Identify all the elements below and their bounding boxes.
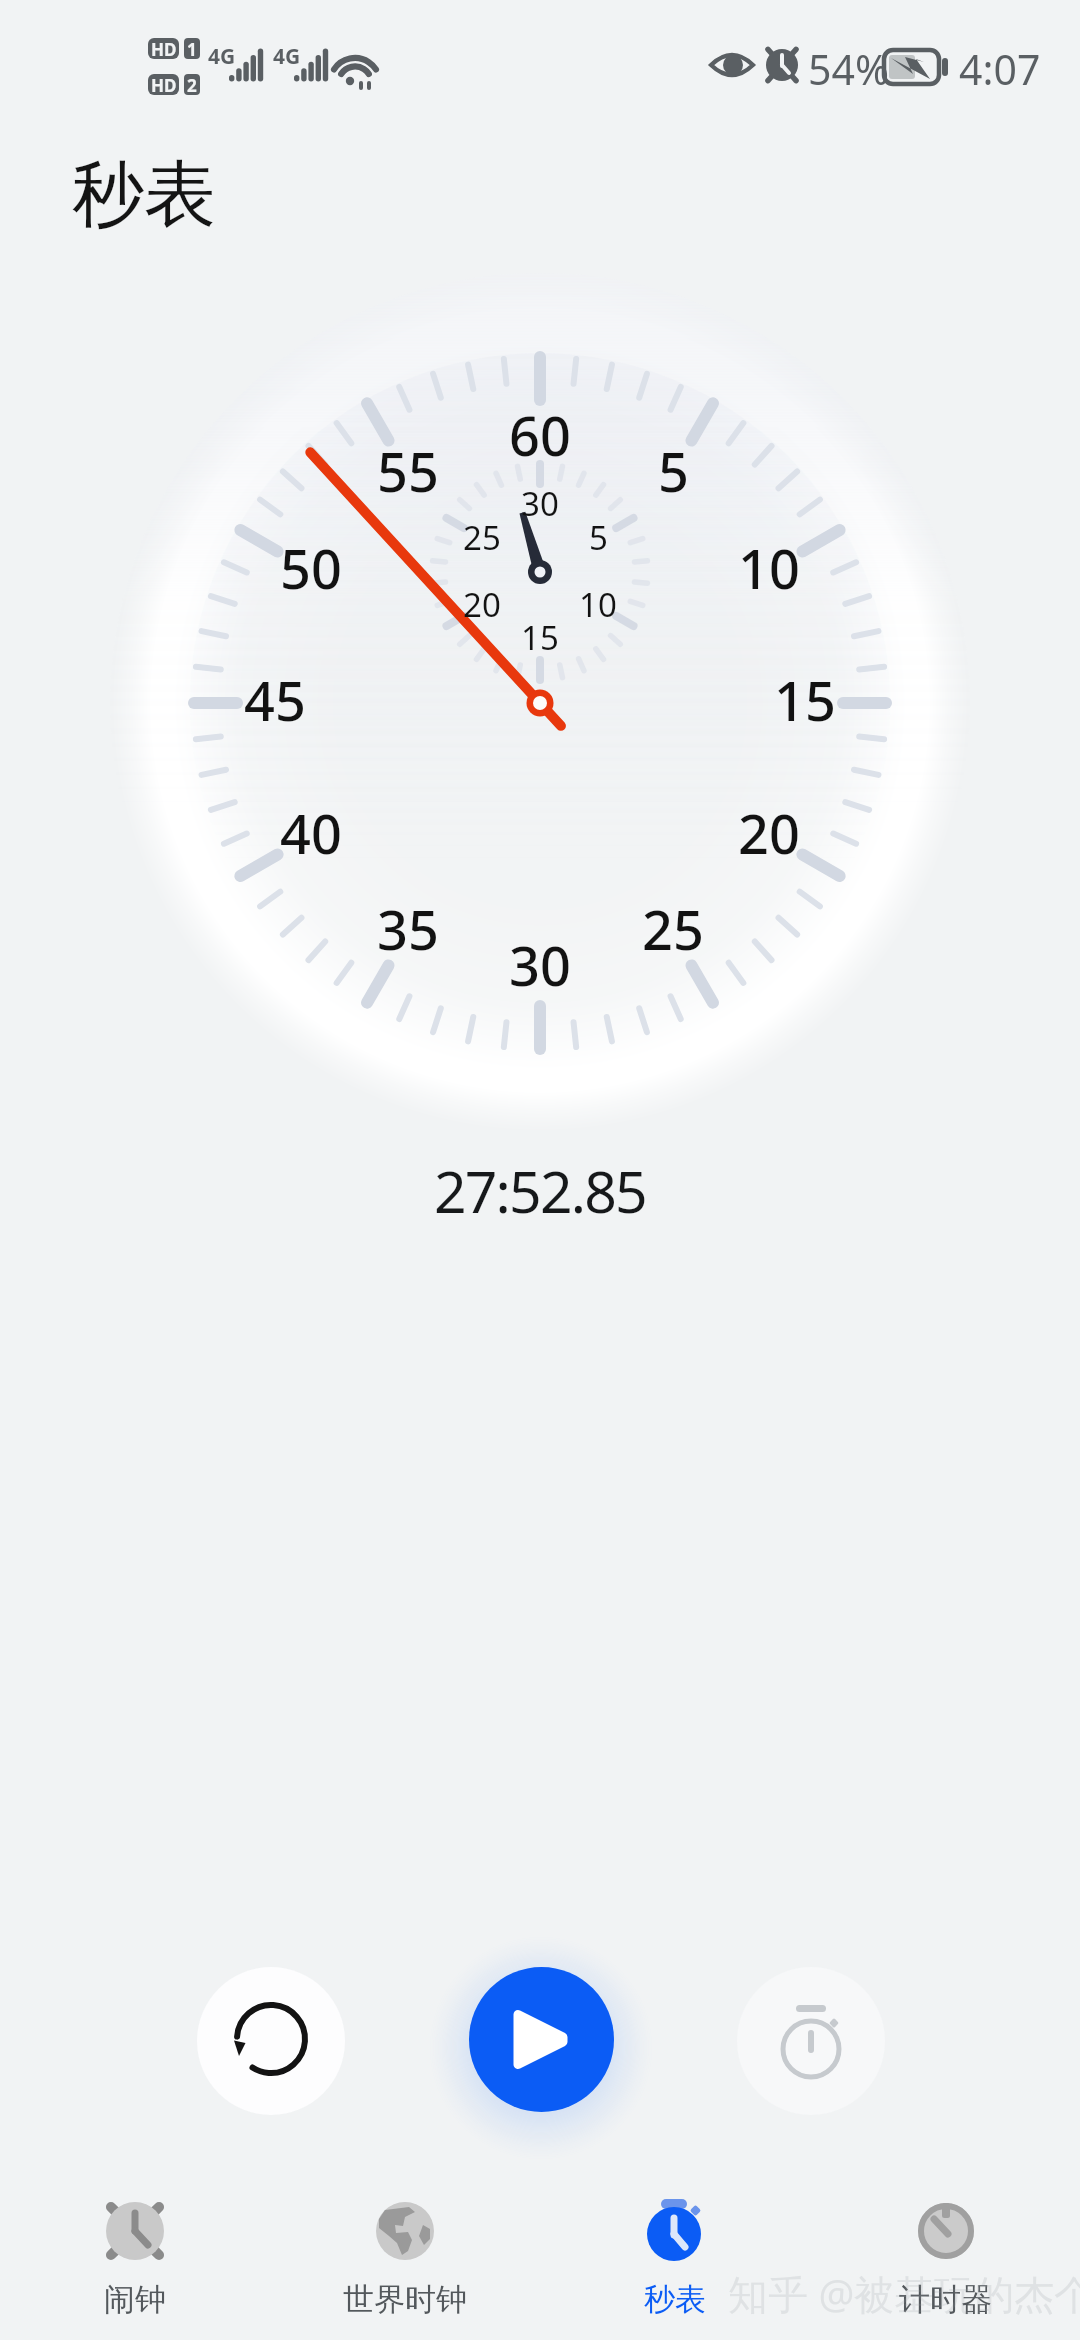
staticText: 5 [658, 434, 689, 508]
staticText: 27:52.85 [434, 1152, 646, 1230]
staticText: 10 [579, 582, 617, 627]
staticText: 50 [280, 531, 342, 605]
staticText: 20 [738, 796, 800, 870]
staticText: 35 [377, 892, 439, 966]
staticText: 5 [589, 515, 608, 560]
staticText: 1 [187, 38, 197, 59]
button[interactable]: 闹钟 [0, 2195, 270, 2340]
staticText: HD [151, 38, 177, 59]
button[interactable]: 计时器 [810, 2195, 1080, 2340]
staticText: 15 [774, 663, 836, 737]
staticText: HD [151, 74, 177, 95]
staticText: 30 [509, 928, 571, 1002]
staticText: 世界时钟 [343, 2280, 467, 2319]
staticText: 54% [808, 41, 889, 97]
button[interactable]: Lap [737, 1967, 885, 2115]
staticText: 4G [273, 42, 301, 66]
staticText: 4G [208, 42, 236, 66]
staticText: 25 [463, 515, 501, 560]
staticText: 20 [463, 582, 501, 627]
staticText: 60 [509, 398, 571, 472]
button[interactable]: Start [469, 1967, 614, 2112]
button[interactable]: Reset [197, 1967, 345, 2115]
staticText: 4:07 [959, 41, 1041, 97]
staticText: 闹钟 [104, 2280, 166, 2319]
staticText: 25 [642, 892, 704, 966]
staticText: 30 [521, 481, 559, 526]
button[interactable]: 世界时钟 [270, 2195, 540, 2340]
button[interactable]: 秒表 [540, 2195, 810, 2340]
staticText: 秒表 [72, 150, 216, 241]
staticText: 45 [244, 663, 306, 737]
staticText: 计时器 [899, 2280, 992, 2319]
staticText: 秒表 [644, 2280, 706, 2319]
staticText: 15 [521, 615, 559, 660]
staticText: 10 [738, 531, 800, 605]
staticText: 2 [187, 74, 197, 95]
staticText: 55 [377, 434, 439, 508]
staticText: 知乎 @被基玩的杰个 [728, 2266, 1080, 2321]
staticText: 40 [280, 796, 342, 870]
